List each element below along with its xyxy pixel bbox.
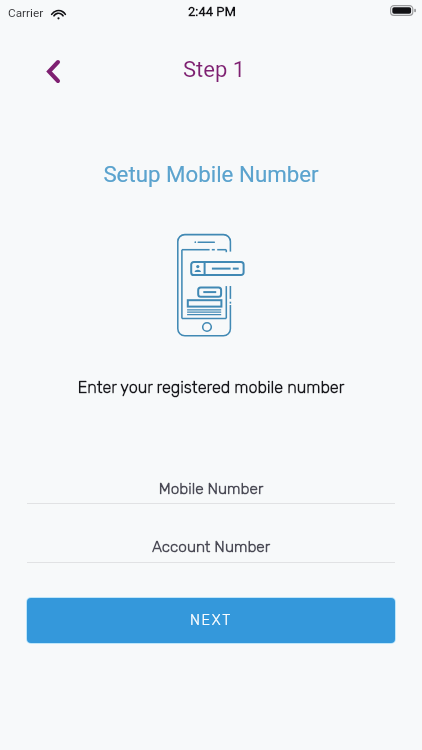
- staticText: NEXT: [190, 611, 232, 628]
- staticText: Mobile Number: [0, 480, 422, 498]
- button[interactable]: Back: [37, 55, 69, 87]
- staticText: Carrier: [8, 6, 44, 20]
- button[interactable]: NEXT: [27, 598, 395, 643]
- staticText: Account Number: [0, 538, 422, 556]
- staticText: Step 1: [3, 57, 422, 83]
- staticText: Setup Mobile Number: [0, 161, 422, 187]
- staticText: 2:44 PM: [188, 4, 236, 19]
- staticText: Enter your registered mobile number: [0, 378, 422, 397]
